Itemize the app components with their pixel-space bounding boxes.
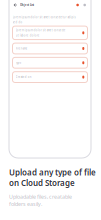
button[interactable]: Lorem ipsum dolor sit amet consecte (12, 26, 87, 40)
staticText: folders easily. (9, 200, 42, 207)
button[interactable]: Type (12, 57, 87, 68)
staticText: on Cloud Storage (9, 178, 75, 188)
button[interactable]: Back (14, 3, 17, 7)
staticText: Upload any type of file (9, 167, 96, 178)
staticText: sed do (12, 20, 22, 24)
button[interactable]: Notifications (76, 4, 79, 6)
staticText: Created on (16, 75, 32, 79)
staticText: ut labore dolore (16, 34, 40, 37)
button[interactable]: Account (83, 4, 86, 6)
staticText: Filename (16, 47, 28, 50)
staticText: Object List (20, 3, 34, 7)
staticText: Uploadable files, creatable (9, 193, 72, 200)
staticText: Type (16, 61, 22, 64)
staticText: Lorem ipsum dolor sit amet consectetur a… (12, 15, 75, 19)
button[interactable]: Filename (12, 43, 87, 54)
staticText: Lorem ipsum dolor sit amet consecte (16, 28, 66, 32)
button[interactable]: Created on (12, 72, 87, 82)
